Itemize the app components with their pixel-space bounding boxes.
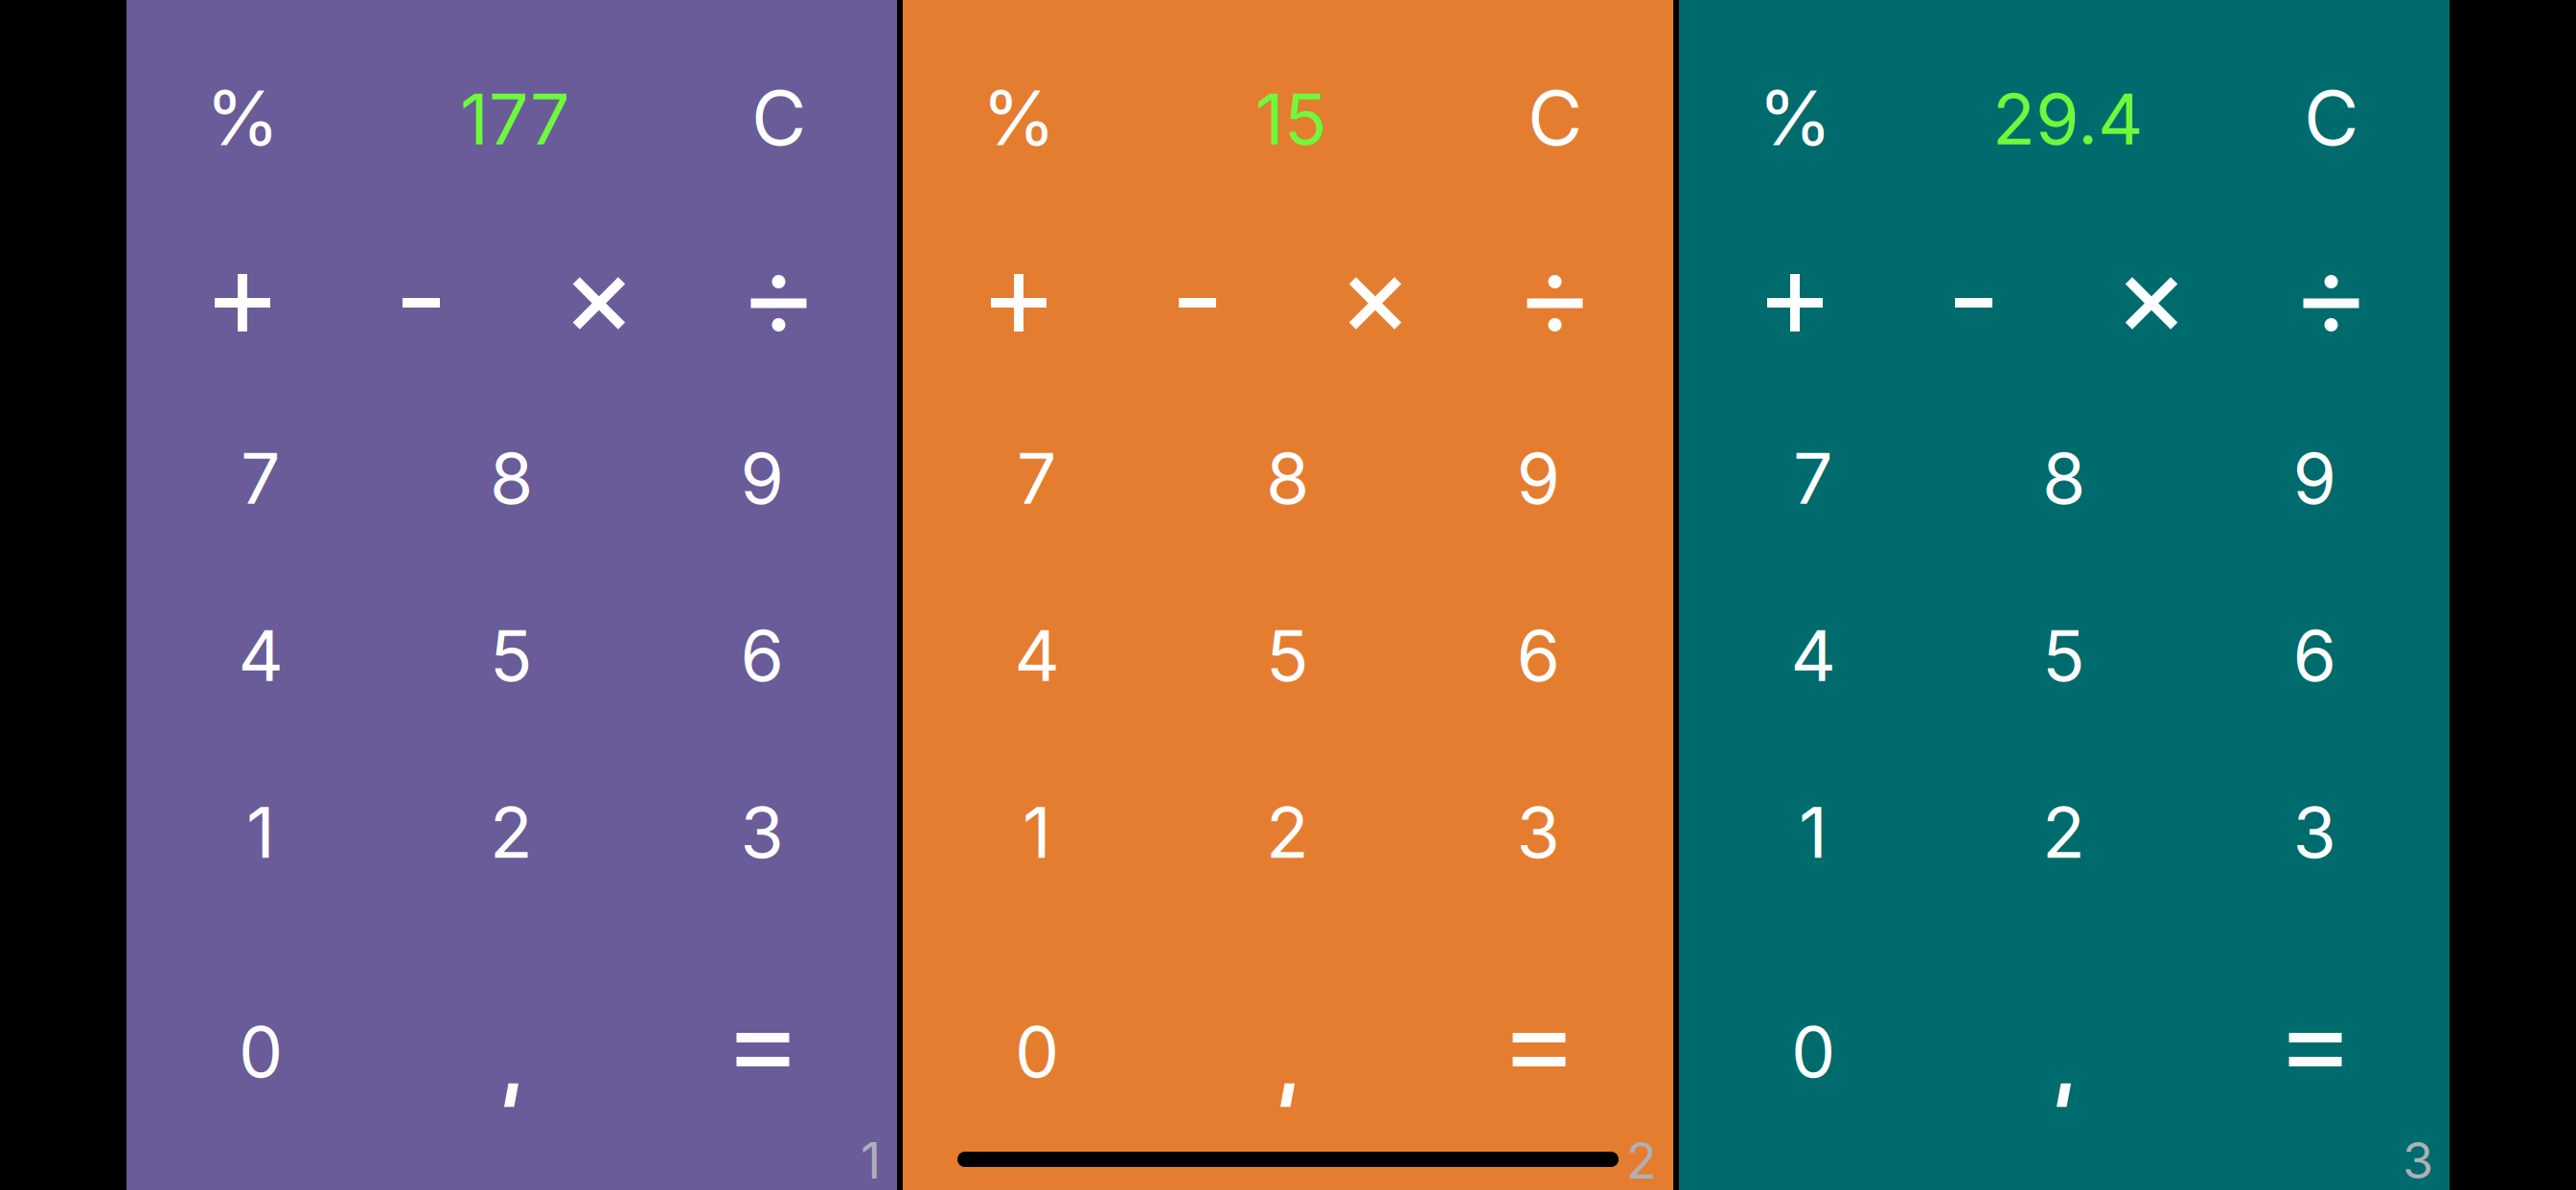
button[interactable]: 3: [637, 744, 887, 920]
staticText: 9: [1517, 436, 1560, 521]
staticText: 1: [861, 1130, 881, 1190]
staticText: 3: [740, 790, 783, 875]
button[interactable]: 1: [136, 744, 386, 920]
staticText: 5: [2042, 613, 2085, 698]
staticText: %: [1758, 72, 1832, 163]
button[interactable]: 4: [136, 567, 386, 744]
staticText: 9: [740, 436, 783, 521]
staticText: 177: [460, 76, 570, 161]
button[interactable]: Percent: [153, 30, 332, 206]
button[interactable]: 5: [1939, 567, 2189, 744]
button[interactable]: 8: [1162, 390, 1413, 566]
staticText: 3: [2293, 790, 2336, 875]
button[interactable]: Clear: [1466, 30, 1644, 206]
button[interactable]: 6: [1413, 567, 1663, 744]
staticText: C: [1528, 72, 1582, 163]
button[interactable]: Decimal separator: [386, 1007, 636, 1183]
button[interactable]: Divide: [2242, 215, 2420, 391]
staticText: 29.4: [1992, 76, 2143, 161]
button[interactable]: 4: [1688, 567, 1938, 744]
staticText: 15: [1255, 76, 1327, 161]
staticText: 6: [1517, 613, 1560, 698]
button[interactable]: Divide: [1466, 215, 1644, 391]
button[interactable]: Equals: [638, 961, 888, 1138]
staticText: 4: [238, 613, 283, 698]
button[interactable]: 8: [386, 390, 636, 566]
staticText: 2: [1266, 790, 1309, 875]
button[interactable]: Divide: [690, 215, 868, 391]
button[interactable]: 6: [2189, 567, 2439, 744]
staticText: 6: [2293, 613, 2336, 698]
staticText: 6: [740, 613, 783, 698]
button[interactable]: 9: [1413, 390, 1663, 566]
button[interactable]: 1: [912, 744, 1162, 920]
staticText: 2: [490, 790, 533, 875]
button[interactable]: 1: [1688, 744, 1938, 920]
staticText: 2: [2042, 790, 2085, 875]
button[interactable]: Multiply: [510, 215, 688, 391]
staticText: 8: [490, 436, 533, 521]
staticText: 3: [2403, 1130, 2433, 1190]
button[interactable]: Equals: [1414, 961, 1664, 1138]
button[interactable]: 8: [1939, 390, 2189, 566]
button[interactable]: Subtract: [332, 215, 510, 391]
staticText: %: [982, 72, 1056, 163]
staticText: 4: [1014, 613, 1059, 698]
staticText: 1: [1023, 790, 1051, 875]
button[interactable]: 0: [1688, 963, 1938, 1140]
button[interactable]: 7: [912, 390, 1162, 566]
button[interactable]: Add: [1706, 215, 1884, 391]
staticText: 1: [1799, 790, 1828, 875]
staticText: 0: [239, 1009, 283, 1094]
staticText: 0: [1791, 1009, 1835, 1094]
staticText: 8: [2042, 436, 2085, 521]
staticText: 5: [490, 613, 533, 698]
button[interactable]: 7: [1688, 390, 1938, 566]
button[interactable]: 9: [2189, 390, 2439, 566]
button[interactable]: 2: [386, 744, 636, 920]
button[interactable]: Subtract: [1885, 215, 2063, 391]
button[interactable]: Add: [153, 215, 332, 391]
button[interactable]: Clear: [2242, 30, 2420, 206]
button[interactable]: Equals: [2190, 961, 2440, 1138]
staticText: 7: [241, 436, 281, 521]
button[interactable]: 5: [1162, 567, 1413, 744]
staticText: %: [206, 72, 279, 163]
staticText: 7: [1017, 436, 1057, 521]
staticText: 2: [1626, 1130, 1657, 1190]
button[interactable]: 4: [912, 567, 1162, 744]
staticText: 7: [1793, 436, 1833, 521]
button[interactable]: 3: [1413, 744, 1663, 920]
button[interactable]: 5: [386, 567, 636, 744]
button[interactable]: Multiply: [2062, 215, 2241, 391]
button[interactable]: Subtract: [1108, 215, 1287, 391]
staticText: 5: [1266, 613, 1309, 698]
button[interactable]: 0: [912, 963, 1162, 1140]
staticText: 4: [1791, 613, 1836, 698]
button[interactable]: Clear: [690, 30, 868, 206]
button[interactable]: Decimal separator: [1939, 1007, 2189, 1183]
button[interactable]: Percent: [1706, 30, 1884, 206]
button[interactable]: 2: [1162, 744, 1413, 920]
staticText: C: [751, 72, 806, 163]
button[interactable]: Percent: [930, 30, 1108, 206]
staticText: 9: [2293, 436, 2336, 521]
button[interactable]: Add: [930, 215, 1108, 391]
button[interactable]: 3: [2189, 744, 2439, 920]
staticText: 3: [1517, 790, 1560, 875]
button[interactable]: Multiply: [1286, 215, 1464, 391]
staticText: 0: [1015, 1009, 1059, 1094]
button[interactable]: 0: [136, 963, 386, 1140]
button[interactable]: Decimal separator: [1162, 1007, 1413, 1183]
button[interactable]: 7: [136, 390, 386, 566]
staticText: C: [2304, 72, 2358, 163]
button[interactable]: 9: [637, 390, 887, 566]
staticText: 8: [1266, 436, 1309, 521]
staticText: 1: [246, 790, 275, 875]
button[interactable]: 2: [1939, 744, 2189, 920]
button[interactable]: 6: [637, 567, 887, 744]
